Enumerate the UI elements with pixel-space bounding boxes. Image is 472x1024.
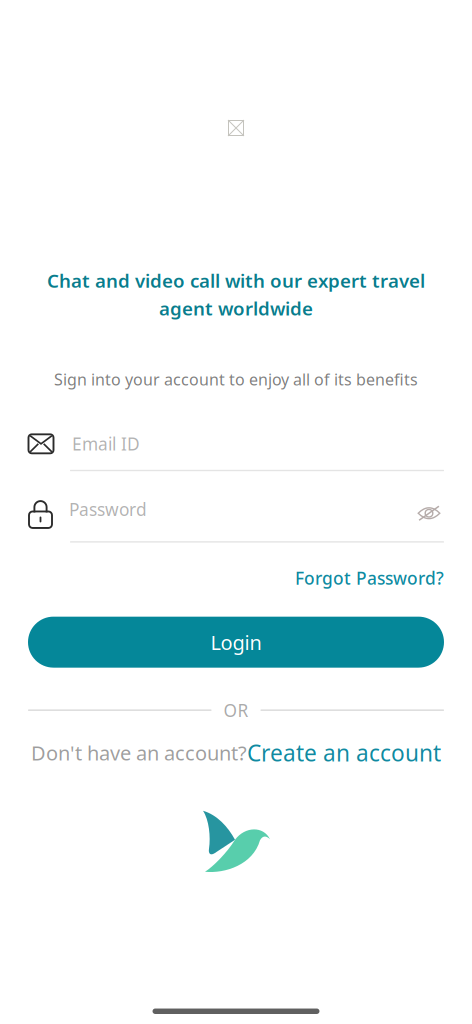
image [228, 120, 244, 136]
button[interactable]: Create an account [247, 738, 441, 768]
staticText: agent worldwide [159, 296, 313, 321]
staticText: Don't have an account? [31, 739, 247, 766]
staticText: Sign into your account to enjoy all of i… [54, 369, 418, 390]
button[interactable]: Forgot Password? [295, 561, 444, 596]
staticText: Password [69, 498, 147, 521]
button[interactable]: Login [28, 617, 444, 668]
staticText: Email ID [72, 432, 140, 455]
staticText: OR [223, 699, 248, 722]
staticText: Chat and video call with our expert trav… [47, 268, 425, 293]
staticText: Forgot Password? [295, 567, 444, 590]
staticText: Login [210, 629, 261, 655]
button[interactable]: Show password [414, 495, 444, 523]
staticText: Create an account [247, 738, 441, 768]
